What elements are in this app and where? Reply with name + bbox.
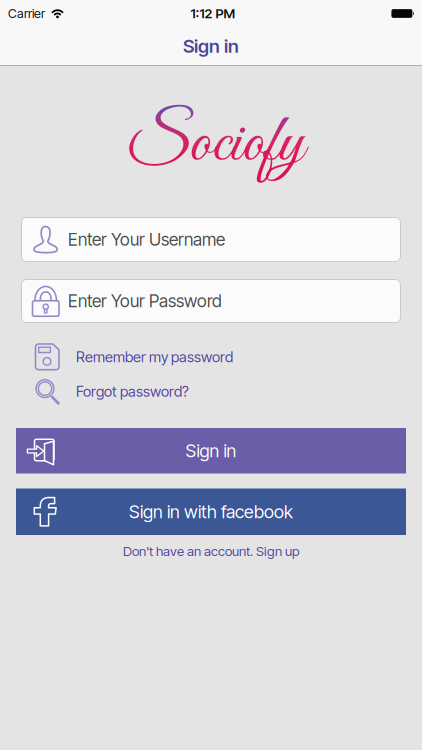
button[interactable]: Sign in with facebook xyxy=(16,488,406,535)
staticText: Sign in with facebook xyxy=(129,501,293,522)
button[interactable]: Don't have an account. Sign up xyxy=(123,543,299,559)
staticText: Sign in xyxy=(183,35,239,57)
staticText: 1:12 PM xyxy=(190,5,235,21)
staticText: Enter Your Username xyxy=(68,229,225,250)
staticText: Remember my password xyxy=(76,348,233,366)
button[interactable]: Remember my password xyxy=(0,344,422,370)
staticText: Don't have an account. Sign up xyxy=(123,543,299,559)
staticText: Carrier xyxy=(8,6,45,21)
button[interactable]: Enter Your Username xyxy=(21,217,401,262)
button[interactable]: Sign in xyxy=(16,428,406,473)
staticText: Enter Your Password xyxy=(68,290,222,311)
staticText: Sign in xyxy=(185,440,236,461)
button[interactable]: Forgot password? xyxy=(0,378,422,405)
staticText: Forgot password? xyxy=(76,383,189,400)
button[interactable]: Enter Your Password xyxy=(21,279,401,323)
